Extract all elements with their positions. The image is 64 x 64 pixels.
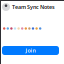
staticText: Join (25, 47, 35, 54)
button[interactable]: Join (2, 46, 59, 55)
staticText: Team Sync Notes (12, 3, 55, 11)
